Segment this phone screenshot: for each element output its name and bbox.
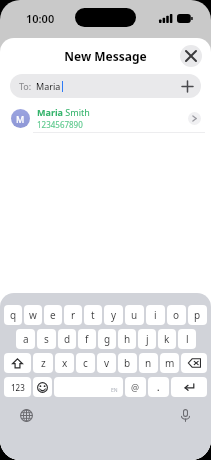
button[interactable]: q bbox=[4, 305, 22, 325]
button[interactable]: l bbox=[178, 329, 196, 349]
staticText: 10:00 bbox=[26, 11, 55, 26]
staticText: EN bbox=[111, 387, 118, 394]
button[interactable]: p bbox=[188, 305, 207, 325]
staticText: Smith bbox=[63, 106, 90, 118]
staticText: New Message bbox=[64, 48, 147, 64]
button[interactable]: c bbox=[76, 353, 95, 373]
button[interactable]: Change keyboard language bbox=[17, 406, 35, 424]
staticText: h bbox=[124, 332, 131, 346]
button[interactable]: t bbox=[84, 305, 102, 325]
button[interactable]: Space bbox=[54, 377, 123, 397]
button[interactable]: o bbox=[167, 305, 186, 325]
staticText: Maria bbox=[36, 80, 61, 92]
staticText: f bbox=[85, 332, 89, 346]
button[interactable]: a bbox=[16, 329, 35, 349]
button[interactable]: k bbox=[158, 329, 176, 349]
button[interactable]: y bbox=[104, 305, 123, 325]
staticText: b bbox=[124, 356, 131, 370]
button[interactable]: Voice input bbox=[176, 406, 194, 424]
button[interactable]: Emoji bbox=[33, 377, 52, 397]
staticText: x bbox=[62, 356, 68, 370]
button[interactable]: Shift bbox=[4, 353, 31, 373]
staticText: m bbox=[165, 356, 175, 370]
staticText: Maria bbox=[37, 106, 63, 118]
staticText: e bbox=[50, 308, 56, 322]
button[interactable]: v bbox=[97, 353, 116, 373]
staticText: n bbox=[145, 356, 152, 370]
staticText: d bbox=[64, 332, 71, 346]
staticText: o bbox=[173, 308, 180, 322]
staticText: l bbox=[186, 332, 189, 346]
staticText: @ bbox=[131, 381, 140, 393]
button[interactable]: . bbox=[148, 377, 169, 397]
button[interactable]: Add contact bbox=[180, 79, 194, 93]
staticText: r bbox=[71, 308, 76, 322]
button[interactable]: n bbox=[139, 353, 158, 373]
staticText: u bbox=[131, 308, 138, 322]
button[interactable]: d bbox=[58, 329, 76, 349]
button[interactable]: Backspace bbox=[181, 353, 207, 373]
button[interactable]: @ bbox=[125, 377, 146, 397]
button[interactable]: b bbox=[118, 353, 137, 373]
staticText: s bbox=[44, 332, 49, 346]
staticText: q bbox=[10, 308, 17, 322]
staticText: j bbox=[146, 332, 149, 346]
staticText: t bbox=[91, 308, 95, 322]
button[interactable]: To: bbox=[10, 74, 201, 98]
button[interactable]: m bbox=[160, 353, 179, 373]
button[interactable]: g bbox=[98, 329, 116, 349]
staticText: w bbox=[29, 308, 37, 322]
staticText: y bbox=[111, 308, 117, 322]
button[interactable]: 123 bbox=[4, 377, 31, 397]
button[interactable]: h bbox=[118, 329, 136, 349]
button[interactable]: e bbox=[44, 305, 62, 325]
button[interactable]: M bbox=[0, 104, 211, 132]
staticText: 123 bbox=[11, 382, 25, 393]
staticText: v bbox=[104, 356, 110, 370]
button[interactable]: i bbox=[146, 305, 165, 325]
button[interactable]: z bbox=[33, 353, 53, 373]
button[interactable]: r bbox=[64, 305, 82, 325]
button[interactable]: Close bbox=[180, 45, 202, 67]
button[interactable]: s bbox=[37, 329, 56, 349]
staticText: z bbox=[41, 356, 46, 370]
button[interactable]: f bbox=[78, 329, 96, 349]
button[interactable]: u bbox=[125, 305, 144, 325]
staticText: i bbox=[154, 308, 157, 322]
staticText: c bbox=[83, 356, 88, 370]
button[interactable]: j bbox=[138, 329, 156, 349]
staticText: k bbox=[164, 332, 170, 346]
button[interactable]: Return bbox=[171, 377, 207, 397]
staticText: 1234567890 bbox=[37, 119, 83, 130]
staticText: a bbox=[23, 332, 29, 346]
staticText: . bbox=[157, 381, 160, 393]
staticText: To: bbox=[19, 80, 32, 92]
staticText: p bbox=[194, 308, 201, 322]
staticText: M bbox=[16, 113, 25, 125]
button[interactable]: w bbox=[24, 305, 42, 325]
button[interactable]: Details bbox=[188, 112, 201, 125]
staticText: g bbox=[104, 332, 111, 346]
button[interactable]: x bbox=[55, 353, 74, 373]
